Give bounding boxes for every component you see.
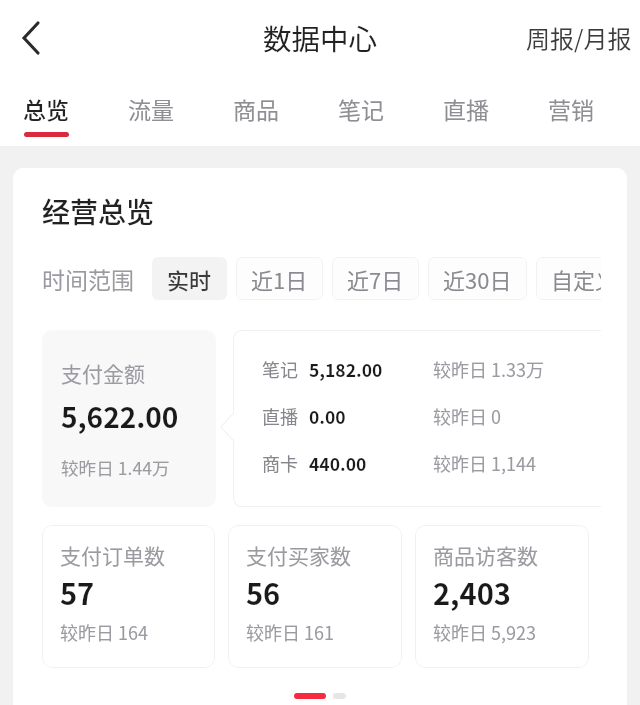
staticText: 周报/月报 [526,20,632,55]
button[interactable]: 直播 [443,75,548,146]
staticText: 直播 [443,92,489,125]
staticText: 较昨日 164 [60,619,149,645]
button[interactable]: 周报/月报 [516,12,640,63]
staticText: 56 [246,571,281,613]
button[interactable]: 支付买家数 [228,525,402,668]
staticText: 经营总览 [42,191,155,232]
button[interactable]: 笔记 [338,75,443,146]
staticText: 实时 [167,263,212,295]
staticText: 支付金额 [61,358,145,388]
staticText: 流量 [128,92,174,125]
staticText: 2,403 [433,571,511,613]
staticText: 直播 [262,403,298,429]
button[interactable]: Back [0,12,52,64]
button[interactable]: 营销 [548,75,594,146]
staticText: 较昨日 0 [433,403,502,429]
staticText: 支付买家数 [246,540,351,570]
button[interactable]: 流量 [128,75,233,146]
button[interactable]: 近30日 [428,257,527,300]
staticText: 5,182.00 [309,357,383,382]
staticText: 较昨日 1.33万 [433,356,545,382]
button[interactable]: 支付金额 [42,330,216,507]
button[interactable]: 实时 [152,257,227,300]
staticText: 时间范围 [42,262,134,295]
staticText: 近1日 [251,263,308,295]
button[interactable]: 近1日 [236,257,323,300]
button[interactable]: 支付订单数 [42,525,215,668]
staticText: 商品访客数 [433,540,538,570]
staticText: 57 [60,571,95,613]
staticText: 较昨日 1.44万 [61,455,170,480]
staticText: 自定义 [551,263,601,295]
button[interactable]: 近7日 [332,257,419,300]
staticText: 总览 [23,92,69,125]
staticText: 商卡 [262,450,298,476]
staticText: 数据中心 [263,17,378,58]
button[interactable]: 总览 [23,75,128,146]
staticText: 笔记 [338,92,384,125]
staticText: 营销 [548,92,594,125]
staticText: 商品 [233,92,279,125]
staticText: 笔记 [262,356,298,382]
staticText: 支付订单数 [60,540,165,570]
staticText: 近7日 [347,263,404,295]
staticText: 较昨日 161 [246,619,335,645]
button[interactable]: 笔记 [220,330,601,507]
staticText: 较昨日 5,923 [433,619,536,645]
button[interactable]: 自定义 [536,257,601,300]
button[interactable]: 商品访客数 [415,525,589,668]
staticText: 5,622.00 [61,396,179,437]
staticText: 较昨日 1,144 [433,450,536,476]
staticText: 近30日 [443,263,512,295]
button[interactable]: 商品 [233,75,338,146]
staticText: 440.00 [309,451,367,476]
staticText: 0.00 [309,404,346,429]
